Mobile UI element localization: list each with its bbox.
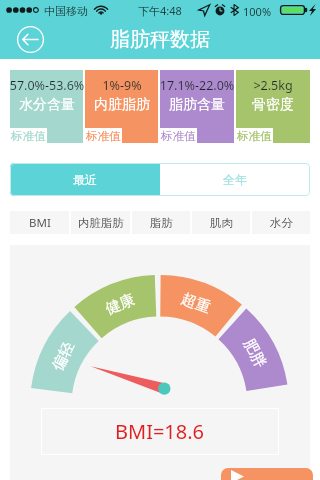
staticText: 骨密度 (218, 96, 320, 114)
button[interactable]: 57.0%-53.6% (10, 70, 83, 143)
staticText: 脂肪 (150, 216, 173, 230)
staticText: 偏轻 (48, 339, 79, 374)
staticText: BMI=18.6 (115, 418, 205, 445)
staticText: 下午4:48 (138, 3, 182, 18)
button[interactable]: 全年 (160, 163, 310, 196)
button[interactable]: 脂肪 (132, 211, 190, 234)
staticText: 标准值 (237, 129, 272, 143)
button[interactable]: 1%-9% (85, 70, 158, 143)
staticText: 57.0%-53.6% (0, 77, 102, 94)
staticText: 水分 (270, 216, 293, 230)
button[interactable]: 最近 (10, 163, 160, 196)
staticText: 内脏脂肪 (78, 216, 124, 230)
staticText: 内脏脂肪 (67, 96, 177, 114)
staticText: 水分含量 (0, 96, 102, 114)
staticText: 脂肪含量 (142, 96, 252, 114)
staticText: >2.5kg (218, 77, 320, 94)
staticText: 中国移动 (44, 4, 88, 18)
staticText: 超重 (178, 289, 213, 317)
staticText: 标准值 (161, 129, 196, 143)
staticText: 全年 (223, 172, 247, 187)
staticText: 脂肪秤数据 (110, 27, 210, 52)
button[interactable]: Back (16, 25, 45, 54)
button[interactable]: Play (221, 468, 313, 480)
button[interactable]: 内脏脂肪 (71, 211, 130, 234)
staticText: 肌肉 (210, 216, 233, 230)
button[interactable]: BMI (10, 211, 69, 234)
staticText: 17.1%-22.0% (142, 77, 252, 94)
staticText: BMI (29, 215, 51, 231)
staticText: 肥胖 (239, 335, 270, 371)
staticText: 标准值 (11, 129, 46, 143)
staticText: 最近 (73, 172, 97, 187)
staticText: 标准值 (86, 129, 121, 143)
button[interactable]: 水分 (252, 211, 310, 234)
staticText: 健康 (103, 290, 138, 319)
staticText: 100% (243, 4, 272, 19)
button[interactable]: 肌肉 (192, 211, 250, 234)
button[interactable]: 17.1%-22.0% (160, 70, 234, 143)
staticText: 1%-9% (67, 77, 177, 94)
button[interactable]: >2.5kg (236, 70, 310, 143)
